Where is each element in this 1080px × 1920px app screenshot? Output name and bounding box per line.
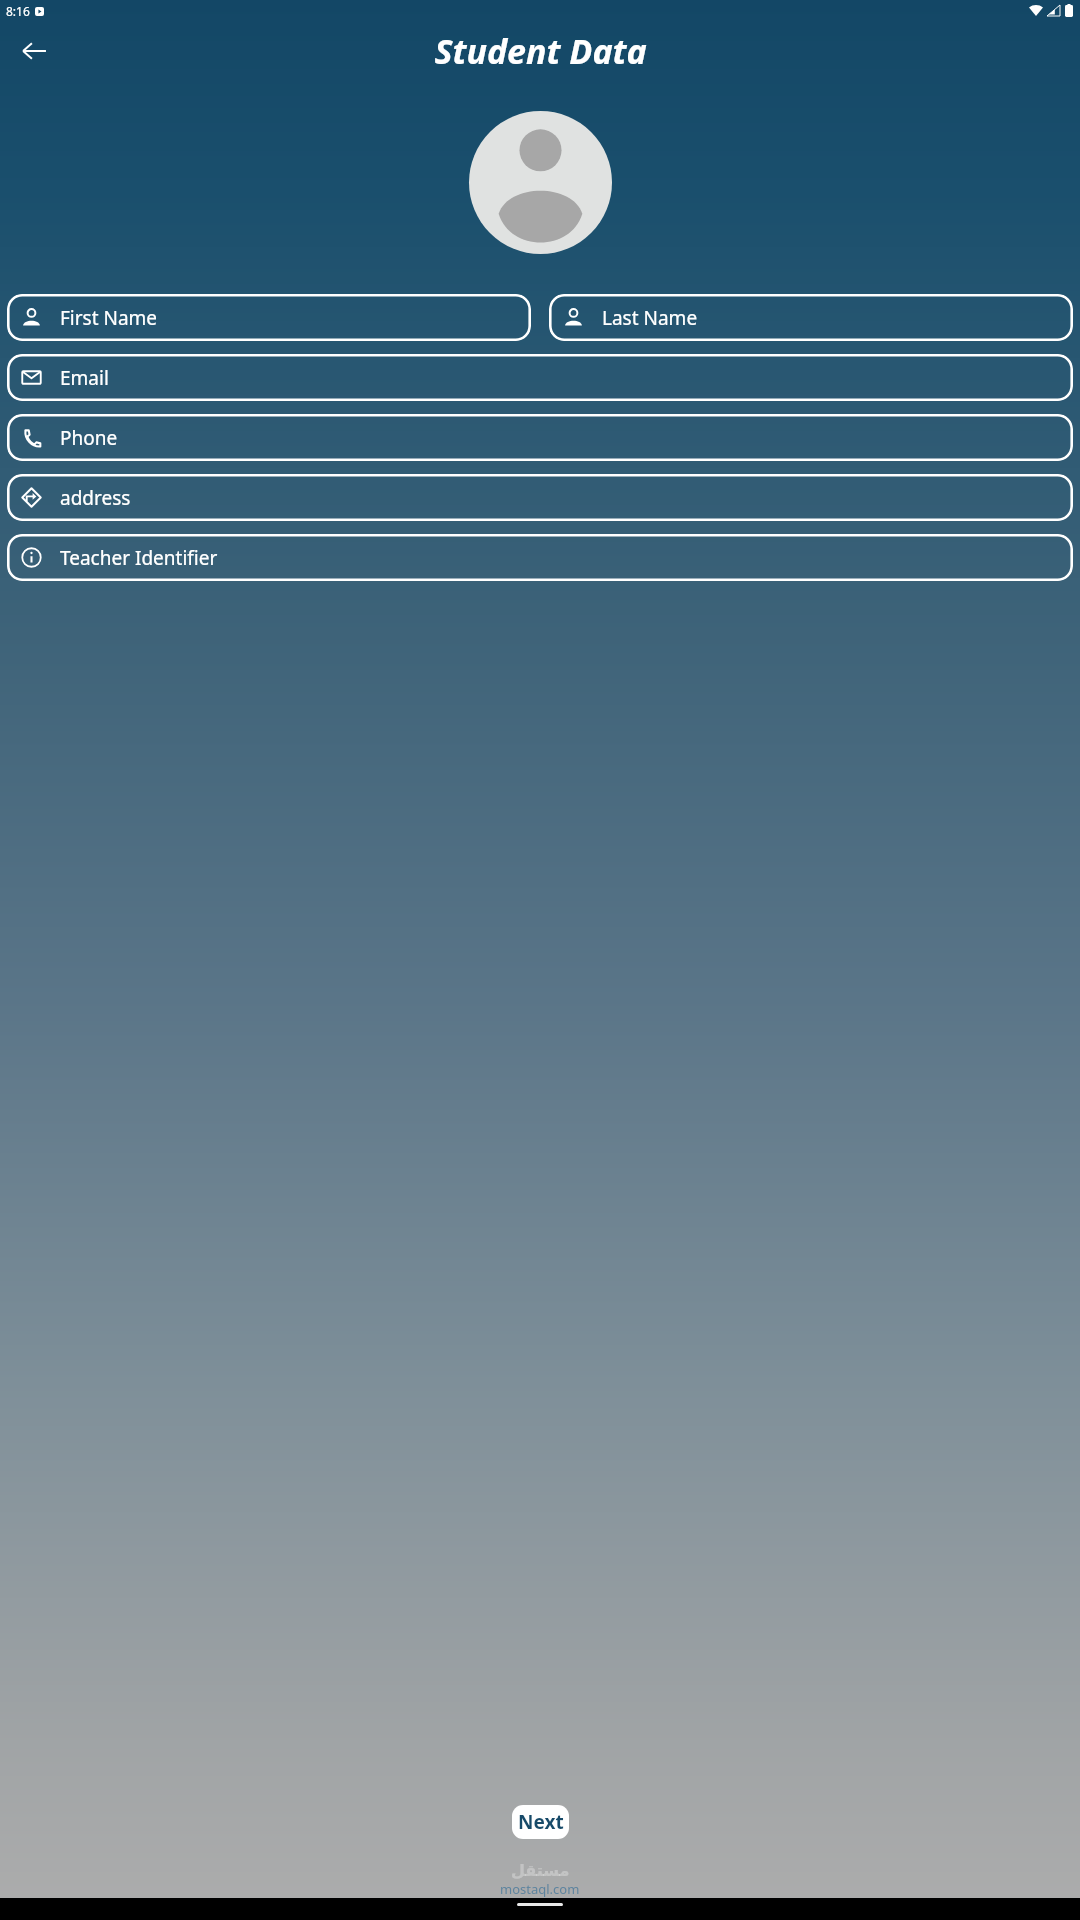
staticText: address [60,485,131,511]
button[interactable]: address [7,474,1073,521]
staticText: Last Name [602,305,698,331]
button[interactable]: Next [512,1805,569,1839]
button[interactable]: Teacher Identifier [7,534,1073,581]
staticText: First Name [60,305,158,331]
staticText: Teacher Identifier [60,545,218,571]
staticText: مستقل [511,1861,570,1880]
staticText: Email [60,365,109,391]
staticText: 8:16 [6,3,30,19]
button[interactable]: Phone [7,414,1073,461]
staticText: mostaql.com [500,1880,580,1898]
button[interactable]: Email [7,354,1073,401]
button[interactable]: Last Name [549,294,1073,341]
staticText: Phone [60,425,118,451]
button[interactable]: Back [10,27,58,75]
button[interactable]: First Name [7,294,531,341]
staticText: Student Data [434,28,647,74]
staticText: Next [518,1809,564,1835]
